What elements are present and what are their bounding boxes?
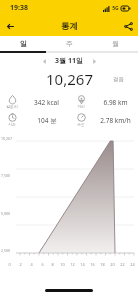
staticText: 6.98 km [103, 98, 128, 107]
staticText: 10,267 [1, 136, 12, 141]
staticText: 7,500 [1, 173, 10, 178]
button[interactable]: 월 [92, 36, 138, 51]
staticText: 5,000 [1, 211, 10, 216]
staticText: 2,500 [1, 248, 10, 253]
staticText: 0 [8, 262, 11, 267]
staticText: 칼로리 [6, 104, 18, 109]
staticText: 18 [100, 262, 105, 267]
staticText: 일 [20, 39, 27, 48]
staticText: 10,267 [46, 69, 93, 89]
staticText: 걸음 [113, 76, 124, 83]
staticText: 3월 11일 [55, 56, 83, 66]
staticText: 342 kcal [34, 98, 59, 107]
staticText: 14 [80, 262, 85, 267]
staticText: 104 분 [37, 116, 57, 125]
button[interactable]: 칼로리 [0, 93, 69, 111]
staticText: 19:38 [10, 3, 28, 13]
staticText: 속도 [77, 122, 85, 127]
staticText: 16 [90, 262, 95, 267]
staticText: 22 [120, 262, 125, 267]
staticText: 통계 [61, 21, 78, 32]
button[interactable]: Previous day [37, 54, 51, 68]
staticText: 8 [51, 262, 54, 267]
button[interactable]: 거리 [69, 93, 138, 111]
staticText: 5G [112, 5, 119, 12]
staticText: 24 [130, 262, 135, 267]
staticText: 6 [41, 262, 44, 267]
staticText: 4 [30, 262, 33, 267]
button[interactable]: Next day [87, 54, 101, 68]
staticText: 2 [19, 262, 22, 267]
button[interactable]: Back [0, 16, 20, 36]
staticText: 10 [60, 262, 65, 267]
staticText: 거리 [77, 104, 85, 109]
staticText: 주 [66, 39, 73, 48]
button[interactable]: 일 [0, 36, 46, 51]
button[interactable]: 주 [46, 36, 92, 51]
button[interactable]: Share [118, 16, 138, 36]
staticText: 시간 [8, 122, 16, 127]
button[interactable]: 속도 [69, 111, 138, 129]
staticText: 2.78 km/h [100, 116, 131, 125]
button[interactable]: 시간 [0, 111, 69, 129]
staticText: 20 [110, 262, 115, 267]
staticText: 12 [70, 262, 75, 267]
staticText: 월 [112, 39, 119, 48]
